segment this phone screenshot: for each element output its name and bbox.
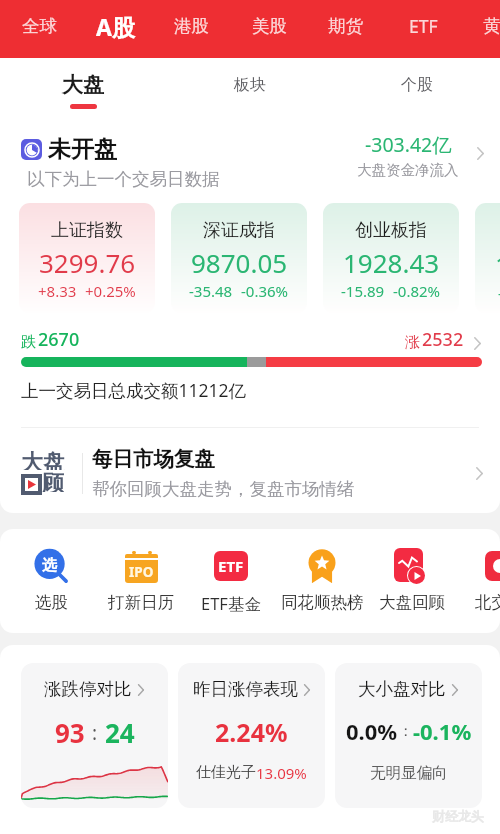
staticText: 创业板指	[355, 219, 427, 242]
button[interactable]: 深证成指	[171, 203, 307, 313]
staticText: 每日市场复盘	[92, 446, 215, 472]
button[interactable]: ETF	[186, 548, 276, 615]
staticText: -0.1%	[413, 716, 472, 746]
staticText: 港股	[174, 15, 209, 37]
staticText: 上证指数	[51, 219, 123, 242]
staticText: 选	[42, 556, 57, 575]
staticText: 3299.76	[39, 245, 136, 280]
button[interactable]: 黄	[466, 0, 500, 55]
button[interactable]: 大盘回顾	[367, 548, 457, 613]
staticText: 同花顺热榜	[281, 592, 364, 613]
staticText: 1928.43	[343, 245, 440, 280]
button[interactable]: 北交所	[455, 548, 500, 613]
button[interactable]: 大	[0, 440, 500, 500]
staticText: :	[92, 720, 98, 746]
staticText: 涨	[405, 333, 420, 352]
staticText: 13.09%	[256, 763, 307, 783]
staticText: 美股	[252, 15, 287, 37]
staticText: 无明显偏向	[370, 763, 448, 783]
staticText: IPO	[129, 563, 154, 581]
button[interactable]: ETF	[397, 0, 449, 55]
staticText: 大盘	[62, 72, 104, 98]
button[interactable]: 大小盘对比	[335, 663, 482, 808]
staticText: ：	[398, 722, 413, 741]
staticText: 仕佳光子	[196, 763, 256, 782]
staticText: ETF	[409, 14, 438, 38]
staticText: 个股	[401, 75, 433, 95]
button[interactable]: 创业板指	[323, 203, 459, 313]
button[interactable]: A股	[85, 0, 145, 55]
staticText: 昨日涨停表现	[193, 678, 298, 700]
staticText: 9870.05	[191, 245, 288, 280]
staticText: 北交所	[475, 592, 500, 613]
staticText: -303.42亿	[365, 131, 452, 158]
staticText: 未开盘	[48, 135, 117, 164]
staticText: 黄	[483, 15, 500, 37]
button[interactable]: 北证50	[475, 203, 500, 313]
staticText: 全球	[22, 15, 57, 37]
button[interactable]: 美股	[243, 0, 295, 55]
staticText: -0.36%	[241, 281, 289, 301]
button[interactable]: 涨跌停对比	[21, 663, 168, 808]
staticText: 大盘资金净流入	[357, 161, 459, 179]
staticText: +0.25%	[85, 281, 136, 301]
staticText: -15.89	[341, 281, 385, 301]
staticText: 期货	[328, 15, 363, 37]
staticText: 2670	[38, 327, 80, 352]
button[interactable]: 大盘	[33, 58, 133, 110]
staticText: ETF基金	[201, 592, 261, 615]
staticText: 24	[105, 715, 135, 750]
staticText: 顾	[42, 470, 64, 492]
staticText: -4.59	[498, 283, 500, 303]
staticText: 板块	[234, 75, 266, 95]
button[interactable]: 同花顺热榜	[277, 548, 367, 613]
staticText: 选股	[35, 592, 68, 613]
button[interactable]: 个股	[367, 58, 467, 110]
staticText: 大	[21, 449, 43, 470]
staticText: 0.0%	[346, 716, 398, 746]
button[interactable]: 板块	[200, 58, 300, 110]
staticText: 财经龙头	[432, 808, 484, 824]
staticText: +8.33	[38, 281, 77, 301]
staticText: 帮你回顾大盘走势，复盘市场情绪	[92, 478, 355, 500]
staticText: ETF	[218, 556, 244, 576]
staticText: 跌	[21, 333, 36, 352]
staticText: -35.48	[189, 281, 233, 301]
staticText: 深证成指	[203, 219, 275, 242]
staticText: -0.82%	[393, 281, 441, 301]
button[interactable]: 港股	[165, 0, 217, 55]
staticText: 上一交易日总成交额11212亿	[21, 378, 247, 402]
button[interactable]: IPO	[96, 548, 186, 613]
staticText: A股	[96, 11, 135, 42]
button[interactable]: 上证指数	[19, 203, 155, 313]
button[interactable]: 全球	[13, 0, 65, 55]
button[interactable]: 昨日涨停表现	[178, 663, 325, 808]
staticText: 涨跌停对比	[44, 678, 132, 700]
staticText: 2532	[422, 327, 464, 352]
staticText: 打新日历	[108, 592, 174, 613]
staticText: 1143.88	[495, 247, 500, 282]
button[interactable]: 期货	[319, 0, 371, 55]
button[interactable]: 选	[6, 548, 96, 613]
staticText: 大小盘对比	[358, 678, 446, 700]
staticText: 2.24%	[215, 715, 288, 749]
staticText: 93	[55, 715, 85, 750]
staticText: 以下为上一个交易日数据	[27, 168, 220, 190]
staticText: 盘	[43, 449, 65, 470]
staticText: 大盘回顾	[379, 592, 445, 613]
